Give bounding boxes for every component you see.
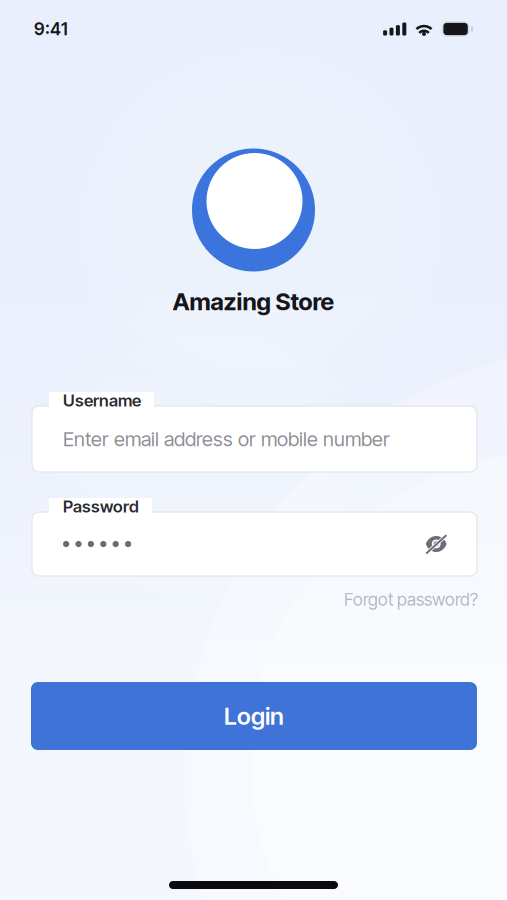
button[interactable]: Login <box>31 682 477 750</box>
button[interactable]: Forgot password? <box>344 589 478 610</box>
staticText: Forgot password? <box>344 589 478 610</box>
staticText: Enter email address or mobile number <box>63 427 390 451</box>
staticText: Amazing Store <box>172 287 334 316</box>
staticText: 9:41 <box>34 18 68 39</box>
staticText: Username <box>63 390 141 411</box>
button[interactable]: Show password <box>414 523 458 565</box>
staticText: Password <box>63 496 139 517</box>
staticText: Login <box>224 701 284 730</box>
